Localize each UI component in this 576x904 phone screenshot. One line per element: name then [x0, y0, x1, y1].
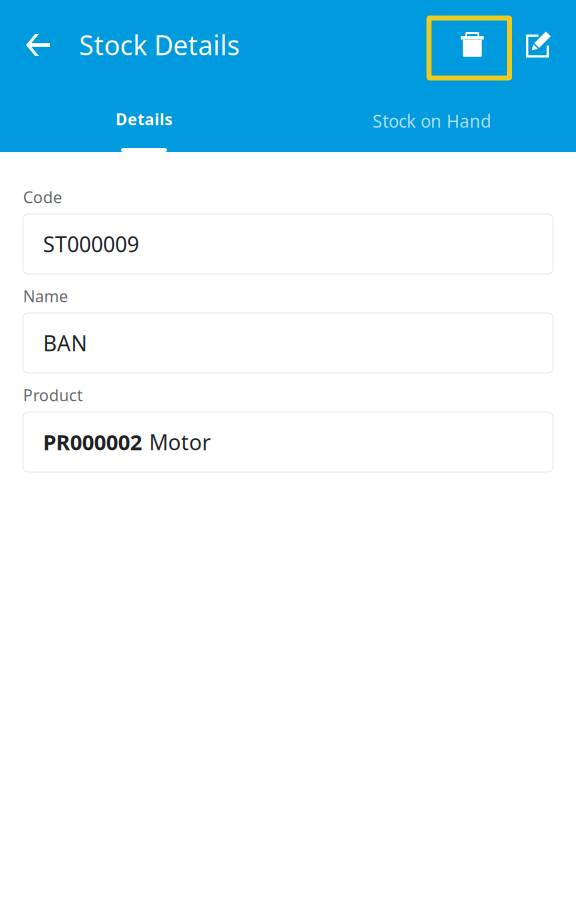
staticText: Code [23, 186, 62, 208]
staticText: Stock Details [79, 27, 240, 63]
button[interactable]: Stock on Hand [288, 90, 576, 152]
staticText: Name [23, 285, 68, 307]
staticText: ST000009 [43, 230, 139, 258]
button[interactable]: Edit [526, 13, 552, 77]
staticText: BAN [43, 329, 87, 357]
staticText: Stock on Hand [372, 109, 491, 132]
button[interactable]: Delete [426, 12, 512, 77]
button[interactable]: Back [0, 0, 79, 90]
staticText: Motor [149, 428, 211, 456]
staticText: Details [115, 108, 172, 130]
staticText: PR000002 [43, 428, 142, 456]
staticText: Product [23, 384, 83, 406]
button[interactable]: Details [0, 90, 288, 152]
